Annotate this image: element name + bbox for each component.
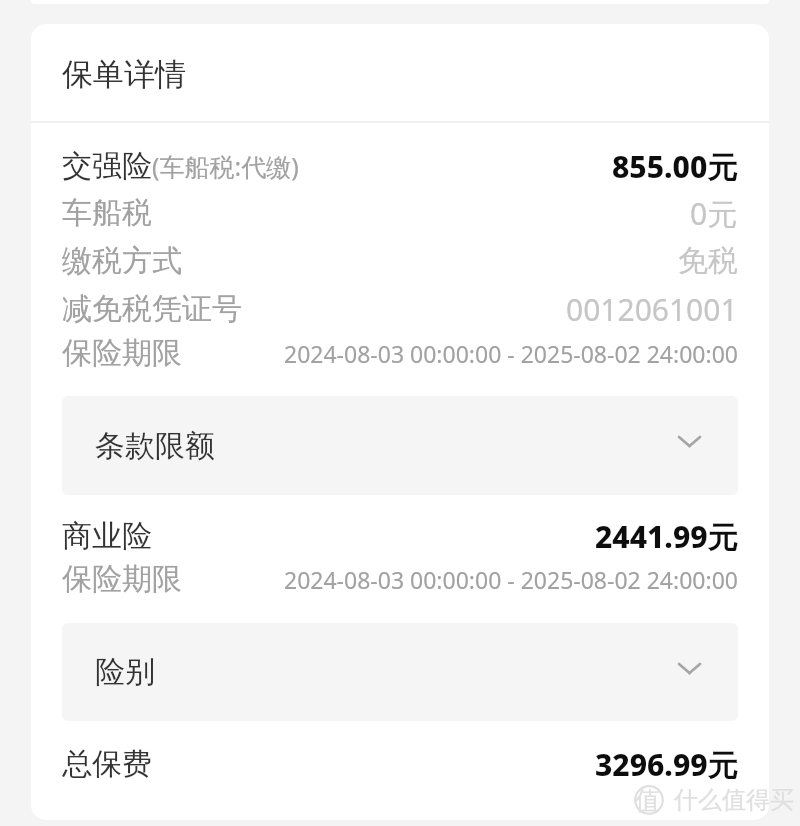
staticText: 0元 <box>690 193 738 234</box>
staticText: 交强险(车船税:代缴) <box>62 147 299 185</box>
staticText: 保险期限 <box>62 334 182 372</box>
staticText: 0012061001 <box>566 289 738 330</box>
staticText: 2024-08-03 00:00:00 - 2025-08-02 24:00:0… <box>284 338 738 369</box>
staticText: 保险期限 <box>62 560 182 598</box>
other: Expand 条款限额 <box>679 437 700 446</box>
staticText: 什么值得买 <box>674 785 794 815</box>
other: Expand 险别 <box>679 664 700 673</box>
staticText: 总保费 <box>62 745 152 783</box>
staticText: 3296.99元 <box>595 744 738 785</box>
staticText: 险别 <box>95 653 155 691</box>
staticText: 2024-08-03 00:00:00 - 2025-08-02 24:00:0… <box>284 564 738 595</box>
staticText: 缴税方式 <box>62 242 182 280</box>
staticText: 值 <box>635 785 660 815</box>
staticText: 免税 <box>678 242 738 280</box>
staticText: 2441.99元 <box>595 516 738 557</box>
staticText: 855.00元 <box>612 146 738 187</box>
staticText: 条款限额 <box>95 427 215 465</box>
button[interactable]: 险别 <box>62 623 738 721</box>
staticText: 减免税凭证号 <box>62 290 242 328</box>
button[interactable]: 条款限额 <box>62 396 738 495</box>
staticText: 保单详情 <box>62 55 186 94</box>
staticText: 车船税 <box>62 194 152 232</box>
staticText: 商业险 <box>62 517 152 555</box>
